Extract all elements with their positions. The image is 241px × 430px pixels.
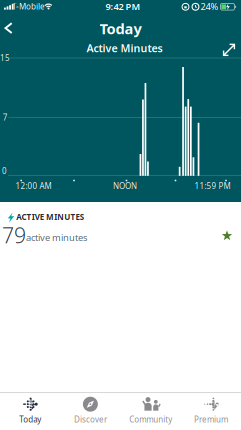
button[interactable]: Premium: [181, 392, 241, 428]
staticText: 9:42 PM: [105, 0, 140, 13]
staticText: 11:59 PM: [194, 181, 230, 191]
button[interactable]: Today: [0, 392, 60, 428]
staticText: Premium: [194, 414, 228, 425]
button[interactable]: Back: [3, 22, 17, 36]
staticText: active minutes: [26, 231, 87, 244]
staticText: Active Minutes: [86, 41, 162, 55]
staticText: 24%: [200, 0, 218, 13]
staticText: Discover: [74, 414, 107, 425]
staticText: 15: [0, 52, 10, 63]
staticText: 0: [2, 166, 7, 176]
staticText: Today: [99, 19, 141, 38]
staticText: 7: [3, 112, 8, 123]
staticText: Community: [129, 414, 172, 425]
button[interactable]: Discover: [60, 392, 120, 428]
staticText: 12:00 AM: [15, 181, 51, 191]
staticText: ACTIVE MINUTES: [16, 212, 84, 222]
button[interactable]: Expand chart: [222, 43, 236, 57]
staticText: 79: [2, 221, 26, 249]
staticText: T-Mobile: [12, 1, 45, 12]
staticText: Today: [19, 414, 41, 425]
staticText: NOON: [113, 181, 137, 191]
button[interactable]: Community: [120, 392, 181, 428]
